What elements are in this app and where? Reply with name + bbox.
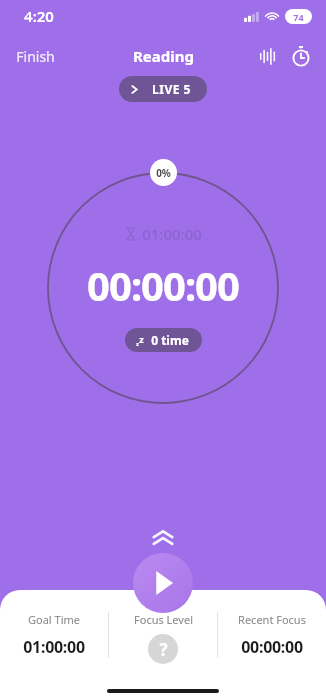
button[interactable]: Finish [0,42,71,71]
staticText: Goal Time [28,612,80,627]
staticText: 00:00:00 [241,636,303,658]
staticText: 01:00:00 [142,224,202,244]
button[interactable]: Start [133,553,193,613]
staticText: Recent Focus [238,612,306,627]
button[interactable]: z [125,328,202,352]
staticText: z [136,340,139,348]
staticText: z [139,333,144,344]
staticText: Reading [133,46,194,66]
staticText: 01:00:00 [23,636,85,658]
staticText: 00:00:00 [87,258,239,312]
staticText: 4:20 [24,6,54,26]
button[interactable]: Sound [250,40,284,72]
button[interactable]: Timer [284,40,318,72]
button[interactable]: Recent Focus [218,612,326,658]
staticText: 74 [293,11,304,23]
button[interactable]: Goal Time [0,612,108,658]
button[interactable]: Expand [143,518,183,558]
staticText: 0 time [151,332,189,348]
staticText: 0% [156,166,171,180]
staticText: Finish [16,47,55,66]
staticText: LIVE 5 [152,81,191,97]
button[interactable]: 0% [150,159,177,186]
button[interactable]: ? [148,634,178,664]
staticText: ? [159,638,168,661]
button[interactable]: LIVE 5 [119,76,207,102]
staticText: Focus Level [134,612,193,627]
